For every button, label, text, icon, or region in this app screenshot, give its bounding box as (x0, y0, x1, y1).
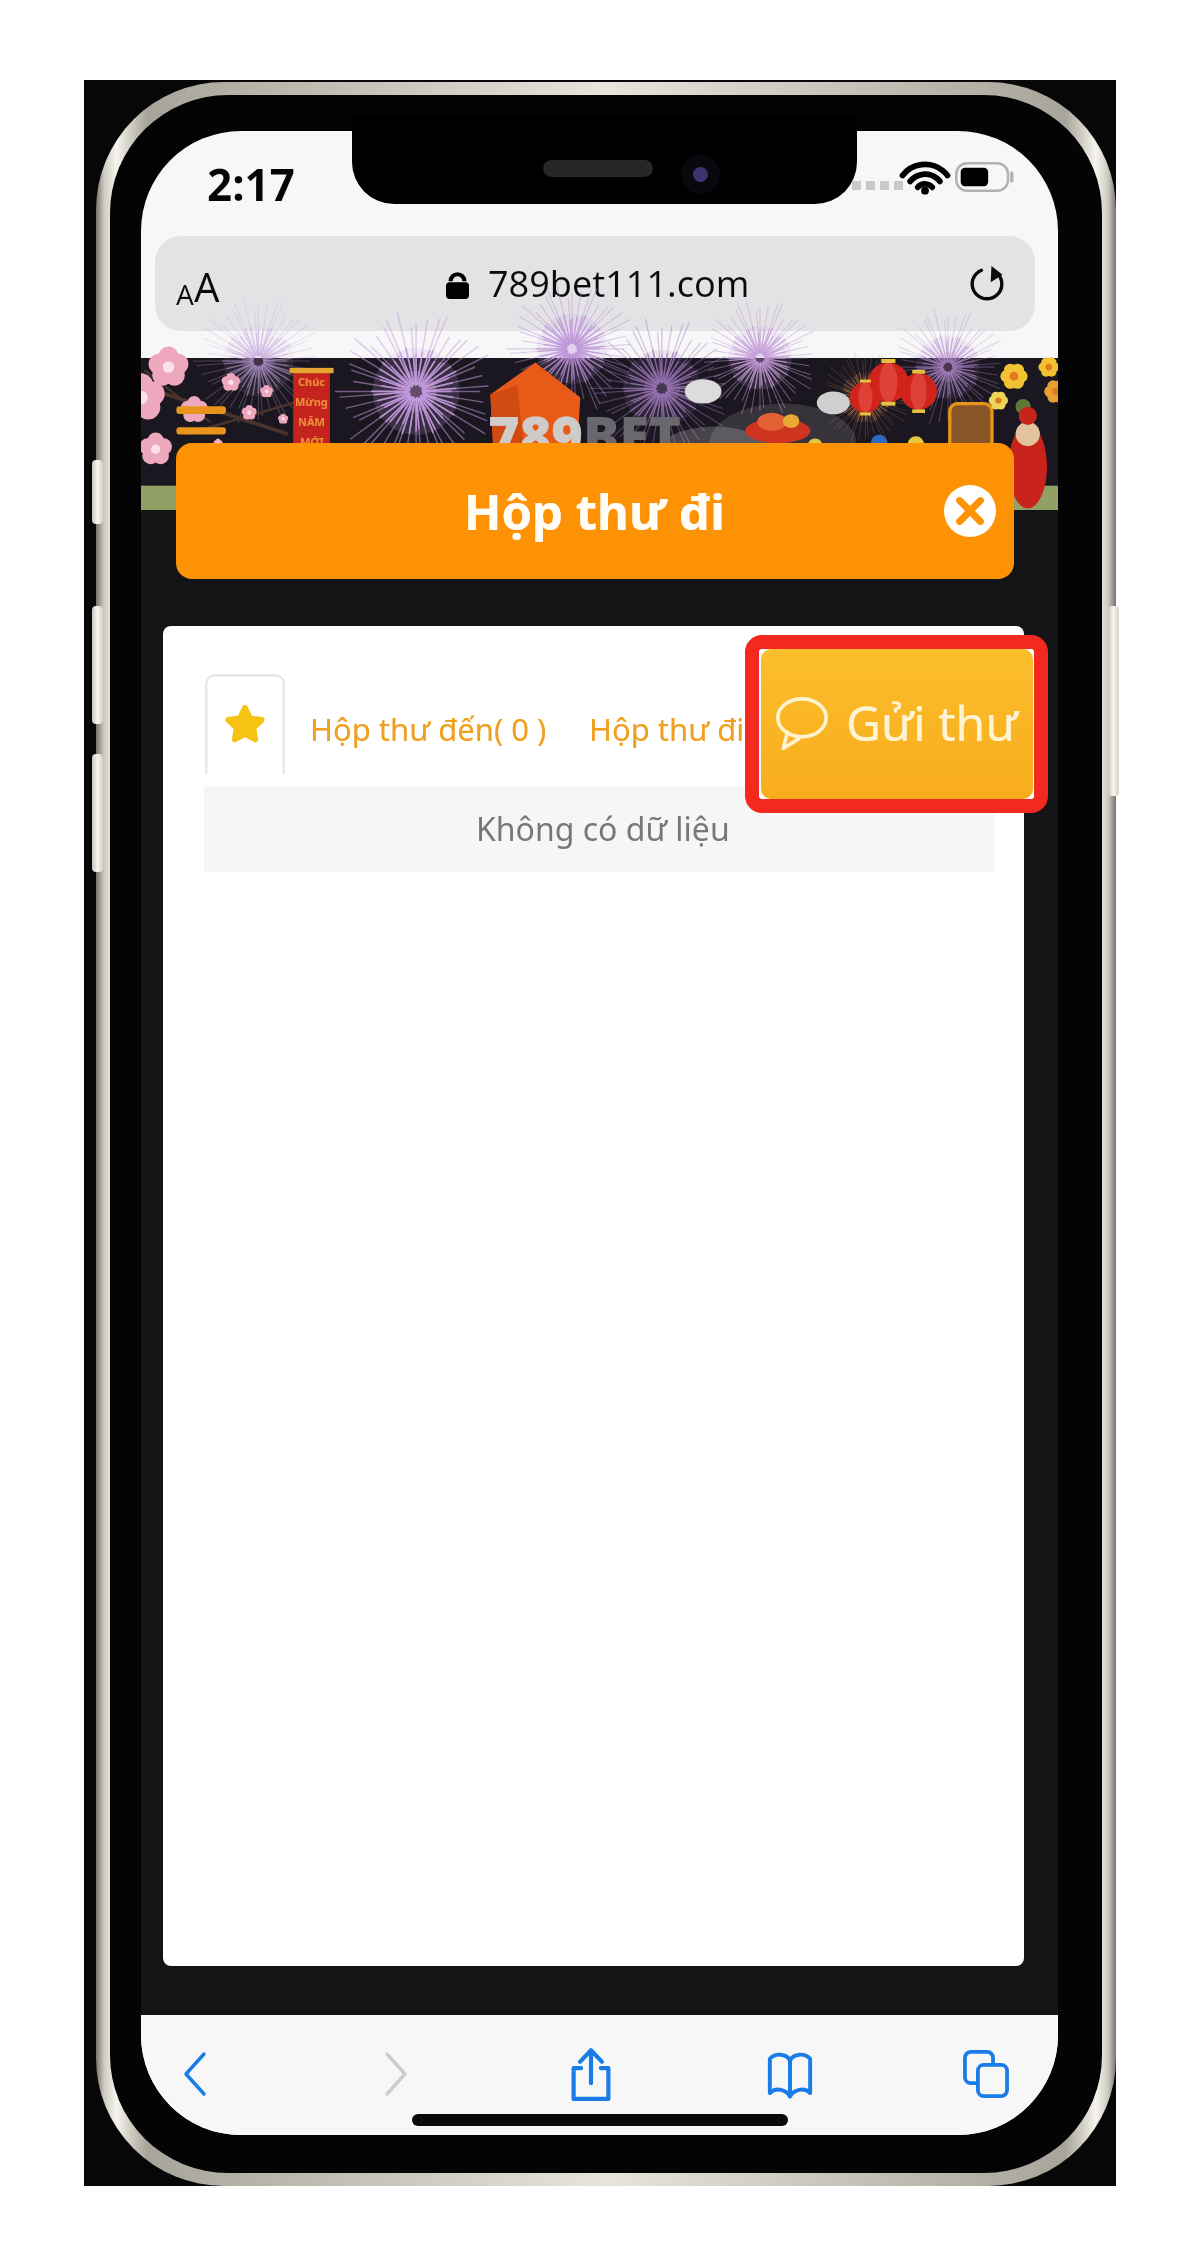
staticText: Hộp thư đi (464, 478, 726, 545)
button[interactable]: Share (545, 2028, 637, 2120)
button[interactable]: Hộp thư đến( 0 ) (290, 676, 567, 782)
staticText: Gửi thư (846, 690, 1018, 755)
button[interactable]: A (155, 236, 1035, 331)
staticText: 789 (488, 398, 583, 472)
staticText: Mừng (295, 394, 328, 409)
staticText: A (194, 259, 220, 313)
staticText: A (176, 275, 194, 313)
staticText: BET (583, 398, 681, 472)
button[interactable]: Back (150, 2028, 242, 2120)
button[interactable]: Favourites (205, 674, 285, 774)
button[interactable]: Bookmarks (744, 2028, 836, 2120)
staticText: 789bet111.com (488, 259, 750, 308)
button[interactable]: Hộp thư đi (567, 676, 767, 782)
staticText: Không có dữ liệu (476, 807, 730, 851)
staticText: MỚI (300, 434, 324, 449)
staticText: Chúc (298, 374, 326, 389)
button[interactable]: Reload page (961, 258, 1013, 310)
button[interactable]: Tabs (940, 2028, 1032, 2120)
staticText: NĂM (298, 414, 325, 429)
staticText: 2:17 (207, 154, 295, 214)
staticText: Hộp thư đi (589, 708, 745, 750)
staticText: Hộp thư đến( 0 ) (310, 708, 547, 750)
button[interactable]: Gửi thư (761, 649, 1033, 799)
button[interactable]: Close (940, 481, 1000, 541)
button[interactable]: Forward (349, 2028, 441, 2120)
button[interactable]: Hộp thư đi (176, 443, 1014, 579)
